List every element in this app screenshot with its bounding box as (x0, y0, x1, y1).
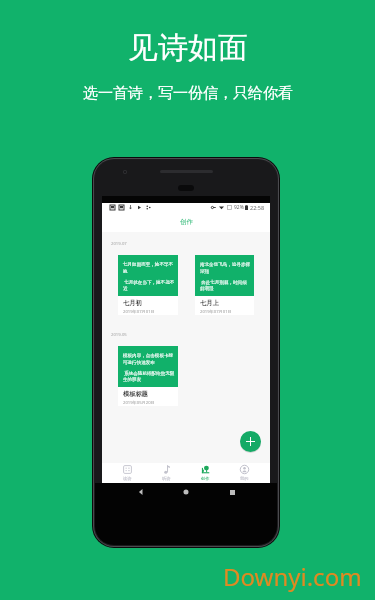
staticText: 七月如期而至，她不早不晚 (123, 262, 175, 274)
staticText: 选一首诗，写一份信，只给你看 (83, 84, 293, 103)
staticText: 我的 (240, 476, 249, 481)
staticText: 读诗 (123, 476, 132, 481)
button[interactable]: Recents (225, 485, 239, 499)
staticText: 模板标题 (123, 390, 148, 398)
staticText: 创作 (180, 218, 193, 226)
button[interactable]: Back (134, 485, 148, 499)
staticText: 系统会随机搭配给您无限生的朋友 (123, 370, 175, 382)
staticText: 2019年07月01日 (200, 309, 232, 315)
staticText: Downyi.com (223, 560, 362, 593)
staticText: 创作 (201, 476, 210, 481)
staticText: 七月就在当下，她不远不近 (123, 279, 175, 291)
staticText: 南北全凭飞鸟，追寻赤裸深翔 (200, 262, 251, 274)
staticText: 七月初 (123, 299, 142, 307)
staticText: 2019-05 (111, 332, 127, 338)
staticText: 2019年07月01日 (123, 309, 155, 315)
button[interactable]: 南北全凭飞鸟，追寻赤裸深翔 (195, 255, 254, 315)
staticText: 2019年05月20日 (123, 400, 155, 406)
button[interactable]: 模板内容，点击模板卡牌可进行快速发布 (118, 346, 178, 406)
staticText: 2019-07 (111, 241, 127, 247)
button[interactable]: 七月如期而至，她不早不晚 (118, 255, 178, 315)
staticText: 92% (234, 204, 244, 211)
button[interactable]: 创作 (186, 463, 225, 483)
staticText: 奔赴七月荆棘，时间倾斜潮湿 (200, 279, 251, 291)
staticText: 见诗如面 (128, 29, 248, 67)
staticText: 七月上 (200, 299, 219, 307)
button[interactable]: 我的 (225, 463, 264, 483)
button[interactable]: 读诗 (108, 463, 147, 483)
staticText: 22:58 (250, 204, 265, 211)
button[interactable]: 听诗 (147, 463, 186, 483)
button[interactable]: Home (179, 485, 193, 499)
staticText: 听诗 (162, 476, 171, 481)
button[interactable]: New poem (240, 431, 261, 452)
staticText: 模板内容，点击模板卡牌可进行快速发布 (123, 353, 175, 365)
